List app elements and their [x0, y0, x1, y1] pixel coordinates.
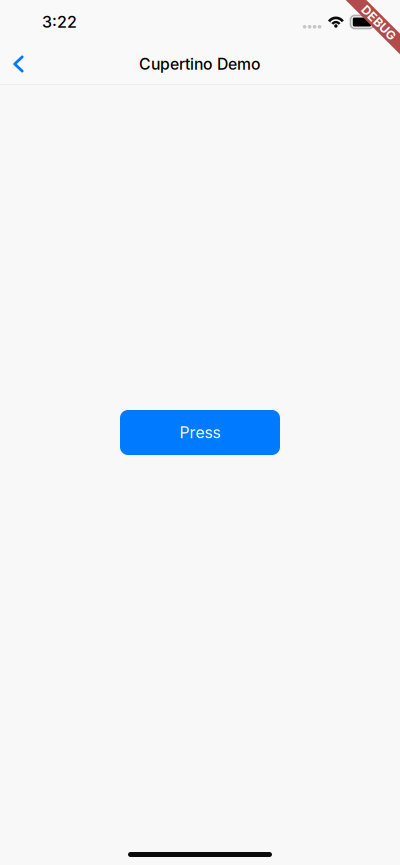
button[interactable]: Back: [0, 44, 40, 84]
staticText: Cupertino Demo: [139, 54, 261, 73]
staticText: Press: [179, 423, 220, 442]
staticText: DEBUG: [357, 15, 400, 30]
staticText: 3:22: [42, 12, 77, 32]
button[interactable]: Press: [120, 410, 280, 455]
